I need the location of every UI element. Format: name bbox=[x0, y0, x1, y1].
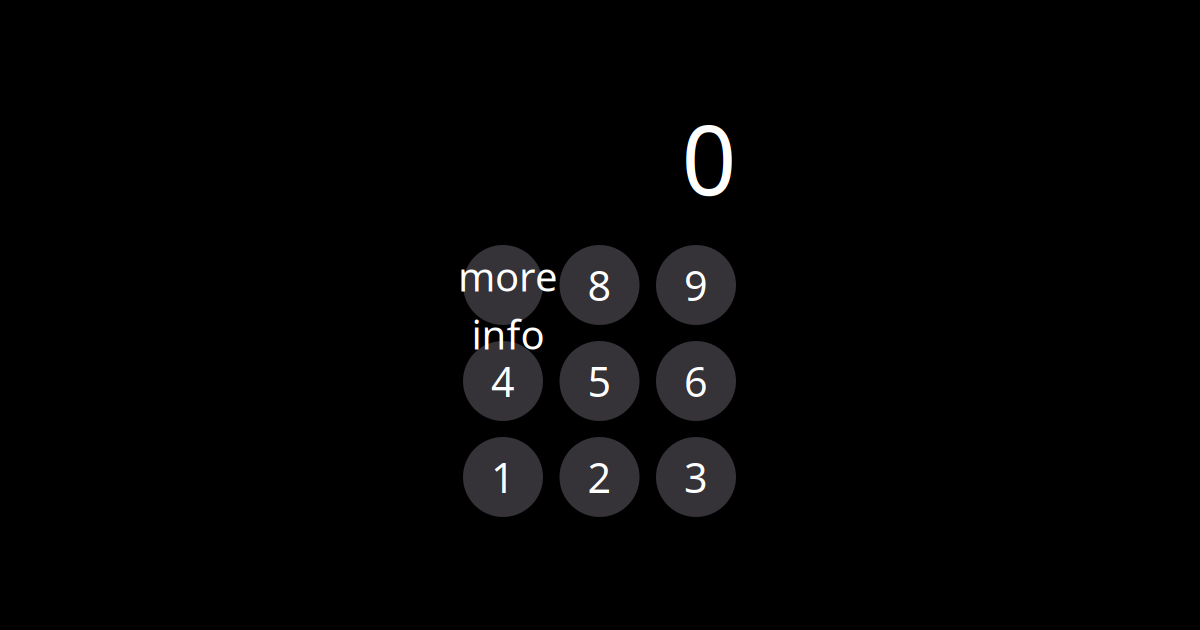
staticText: 0 bbox=[681, 94, 736, 222]
button[interactable]: 6 bbox=[656, 341, 736, 421]
staticText: 3 bbox=[684, 450, 708, 504]
button[interactable]: 7 bbox=[463, 245, 543, 325]
staticText: 1 bbox=[491, 450, 515, 504]
staticText: 2 bbox=[587, 450, 611, 504]
button[interactable]: 4 bbox=[463, 341, 543, 421]
staticText: 8 bbox=[587, 258, 611, 312]
staticText: 9 bbox=[684, 258, 708, 312]
button[interactable]: 5 bbox=[559, 341, 639, 421]
staticText: 5 bbox=[587, 354, 611, 408]
staticText: 6 bbox=[684, 354, 708, 408]
button[interactable]: 2 bbox=[559, 437, 639, 517]
staticText: 4 bbox=[491, 354, 515, 408]
button[interactable]: 8 bbox=[559, 245, 639, 325]
button[interactable]: 1 bbox=[463, 437, 543, 517]
staticText: more bbox=[458, 249, 558, 302]
staticText: info bbox=[471, 307, 544, 361]
button[interactable]: 9 bbox=[656, 245, 736, 325]
button[interactable]: 3 bbox=[656, 437, 736, 517]
button[interactable]: more bbox=[458, 249, 558, 361]
